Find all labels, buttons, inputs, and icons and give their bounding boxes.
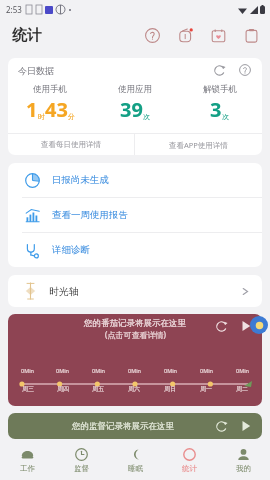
staticText: 您的番茄记录将展示在这里 xyxy=(84,318,186,329)
staticText: 详细诊断 xyxy=(52,244,90,256)
staticText: 周六 xyxy=(128,385,140,393)
button[interactable]: Tomato badge xyxy=(250,316,268,334)
button[interactable]: Refresh supervision xyxy=(213,418,229,434)
staticText: 使用应用 xyxy=(118,84,152,95)
staticText: 今日数据 xyxy=(18,65,54,76)
staticText: 0Min xyxy=(200,367,213,374)
staticText: 0Min xyxy=(128,367,141,374)
staticText: 日报尚未生成 xyxy=(52,174,109,186)
staticText: 查看APP使用详情 xyxy=(169,140,228,150)
button[interactable]: Refresh tomato xyxy=(213,318,229,334)
staticText: 周一 xyxy=(200,385,212,393)
button[interactable]: 统计 xyxy=(162,440,216,480)
staticText: 统计 xyxy=(182,464,197,473)
button[interactable]: Check in xyxy=(207,24,229,46)
button[interactable]: Clipboard xyxy=(240,24,262,46)
button[interactable]: Help xyxy=(141,24,163,46)
staticText: 您的监督记录将展示在这里 xyxy=(72,421,174,432)
staticText: 43 xyxy=(45,96,68,123)
staticText: 统计 xyxy=(12,26,42,45)
staticText: 解锁手机 xyxy=(203,84,237,95)
button[interactable]: 详细诊断 xyxy=(8,233,262,267)
staticText: 我的 xyxy=(236,464,251,473)
staticText: 0Min xyxy=(56,367,69,374)
button[interactable]: 工作 xyxy=(0,440,54,480)
button[interactable]: 您的监督记录将展示在这里 xyxy=(8,413,262,439)
staticText: 39 xyxy=(120,96,143,123)
staticText: 查看一周使用报告 xyxy=(52,209,128,221)
staticText: 3 xyxy=(210,96,222,123)
button[interactable]: Help xyxy=(236,61,254,79)
staticText: 工作 xyxy=(20,464,35,473)
button[interactable]: 日报尚未生成 xyxy=(8,163,262,197)
staticText: 0Min xyxy=(164,367,177,374)
staticText: 查看每日使用详情 xyxy=(41,140,101,149)
staticText: 时光轴 xyxy=(49,285,79,298)
button[interactable]: Start supervision xyxy=(238,418,254,434)
staticText: 0Min xyxy=(92,367,105,374)
button[interactable]: Refresh xyxy=(210,61,228,79)
button[interactable]: 您的番茄记录将展示在这里 xyxy=(8,314,262,406)
button[interactable]: 监督 xyxy=(54,440,108,480)
button[interactable]: 查看一周使用报告 xyxy=(8,198,262,232)
button[interactable]: Start tomato xyxy=(238,318,254,334)
staticText: 时 xyxy=(38,112,45,121)
staticText: 周三 xyxy=(22,385,34,393)
staticText: 1 xyxy=(26,96,38,123)
staticText: (点击可查看详情) xyxy=(105,329,166,340)
staticText: 0Min xyxy=(21,367,34,374)
staticText: 2:53 xyxy=(6,4,22,15)
button[interactable]: 时光轴 xyxy=(8,275,262,307)
staticText: 睡眠 xyxy=(128,464,143,473)
button[interactable]: Tomato timer xyxy=(174,24,196,46)
button[interactable]: 查看每日使用详情 xyxy=(8,134,134,155)
staticText: 次 xyxy=(222,112,229,121)
staticText: 周五 xyxy=(92,385,104,393)
staticText: 分 xyxy=(68,112,75,121)
staticText: 监督 xyxy=(74,464,89,473)
button[interactable]: 我的 xyxy=(216,440,270,480)
staticText: 周二 xyxy=(236,385,248,393)
staticText: 使用手机 xyxy=(33,84,67,95)
button[interactable]: 查看APP使用详情 xyxy=(135,134,262,155)
staticText: 0Min xyxy=(236,367,249,374)
staticText: 次 xyxy=(143,112,150,121)
staticText: 周日 xyxy=(164,385,176,393)
button[interactable]: 睡眠 xyxy=(108,440,162,480)
staticText: 周四 xyxy=(57,385,69,393)
